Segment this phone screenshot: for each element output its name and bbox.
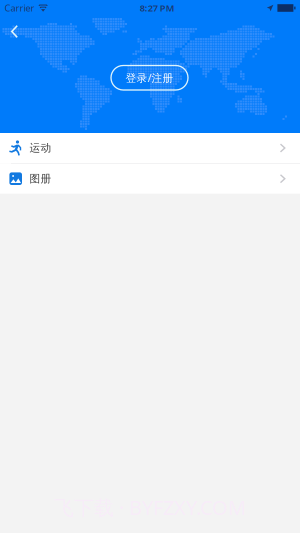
button[interactable]: Back xyxy=(1,17,27,45)
staticText: 运动 xyxy=(29,141,51,154)
staticText: 登录/注册 xyxy=(125,71,173,85)
button[interactable]: 运动 xyxy=(0,133,300,163)
button[interactable]: 图册 xyxy=(0,164,300,194)
button[interactable]: 登录/注册 xyxy=(111,65,188,90)
staticText: 8:27 PM xyxy=(140,2,175,14)
staticText: Carrier xyxy=(4,2,34,14)
staticText: 图册 xyxy=(29,172,51,185)
